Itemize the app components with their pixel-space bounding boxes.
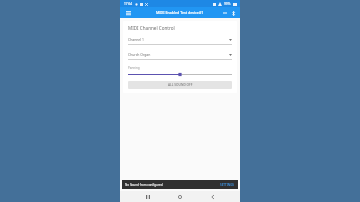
staticText: ALL SOUND OFF	[168, 83, 193, 87]
staticText: Church Organ	[128, 52, 151, 57]
staticText: No Sound from configured	[125, 183, 163, 187]
button[interactable]: Bluetooth	[229, 9, 237, 17]
button[interactable]: ALL SOUND OFF	[128, 81, 232, 89]
button[interactable]: Open navigation menu	[124, 9, 132, 17]
button[interactable]: Channel 1	[128, 37, 232, 45]
button[interactable]: SETTINGS	[219, 182, 235, 188]
staticText: Panning	[128, 66, 140, 70]
staticText: 99%	[224, 2, 231, 6]
button[interactable]: Home	[175, 192, 185, 202]
button[interactable]: Back	[208, 192, 218, 202]
staticText: 17:54	[124, 2, 133, 6]
staticText: SETTINGS	[220, 183, 234, 187]
button[interactable]: Recent apps	[143, 192, 153, 202]
button[interactable]	[128, 72, 232, 77]
staticText: MIDI Enabled Test device#1	[156, 10, 204, 15]
staticText: Channel 1	[128, 37, 144, 42]
button[interactable]: Church Organ	[128, 52, 232, 60]
staticText: MIDI Channel Control	[128, 25, 175, 31]
button[interactable]: Disconnect	[221, 9, 229, 17]
